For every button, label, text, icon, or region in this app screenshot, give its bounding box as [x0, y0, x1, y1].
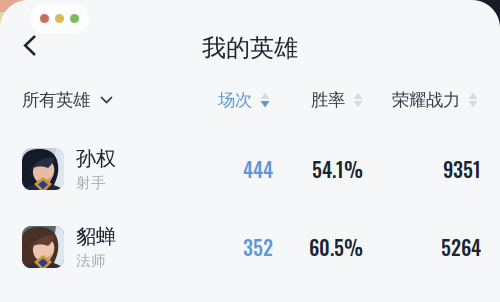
staticText: 法师 — [76, 252, 106, 270]
staticText: 54.1% — [312, 154, 363, 184]
staticText: 场次 — [218, 89, 252, 111]
button[interactable]: 貂蝉 — [0, 208, 500, 286]
button[interactable]: Minimize — [52, 3, 67, 34]
staticText: 60.5% — [309, 232, 363, 262]
staticText: 貂蝉 — [76, 224, 116, 249]
staticText: 胜率 — [311, 89, 345, 111]
staticText: 9351 — [443, 154, 481, 184]
button[interactable]: Back — [0, 17, 50, 59]
staticText: 孙权 — [76, 146, 116, 171]
staticText: 荣耀战力 — [392, 89, 460, 111]
button[interactable]: 孙权 — [0, 130, 500, 208]
staticText: 5264 — [441, 232, 481, 262]
button[interactable]: More — [67, 3, 82, 34]
staticText: 所有英雄 — [22, 89, 90, 111]
button[interactable]: 胜率 — [311, 83, 363, 117]
staticText: 352 — [243, 232, 273, 262]
staticText: 我的英雄 — [202, 33, 298, 63]
button[interactable]: 场次 — [218, 83, 270, 117]
button[interactable]: 所有英雄 — [22, 83, 112, 117]
staticText: 射手 — [76, 174, 106, 192]
button[interactable]: 荣耀战力 — [392, 83, 478, 117]
staticText: 444 — [243, 154, 273, 184]
button[interactable]: Close — [37, 3, 52, 34]
